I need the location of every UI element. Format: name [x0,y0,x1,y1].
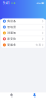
button[interactable]: 我的 [23,92,46,100]
button[interactable]: 首页 [0,92,23,100]
button[interactable]: 消通知 [1,30,45,36]
staticText: 我设备 [7,19,16,23]
staticText: 9:41 [3,1,10,5]
staticText: 更服务 [7,43,16,47]
staticText: 我的 [33,96,35,98]
button[interactable]: 我设备 [1,18,45,24]
button[interactable]: 智场景 [1,24,45,30]
staticText: 去看 [35,43,41,47]
staticText: 智场景 [7,25,16,29]
staticText: 首页 [10,96,12,98]
button[interactable]: 更服务 [1,42,45,48]
staticText: 家安防 [7,37,16,40]
button[interactable]: 家安防 [1,36,45,42]
staticText: 消通知 [7,31,16,35]
